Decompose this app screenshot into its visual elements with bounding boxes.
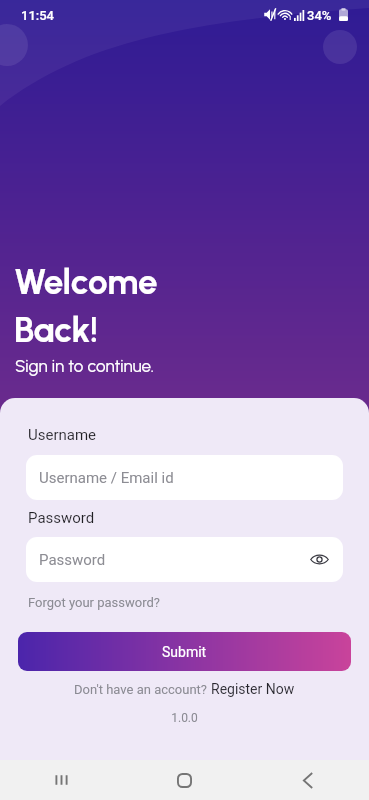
other: Show password [310, 550, 329, 569]
staticText: 34% [307, 8, 332, 23]
staticText: Welcome [14, 261, 158, 303]
staticText: Username / Email id [39, 469, 174, 487]
button[interactable]: Recent apps [0, 760, 123, 800]
staticText: 11:54 [21, 8, 55, 23]
button[interactable]: Password [26, 537, 343, 582]
button[interactable]: Back [246, 760, 369, 800]
staticText: Username [28, 426, 97, 444]
staticText: Back! [14, 309, 99, 351]
button[interactable]: Home [123, 760, 246, 800]
button[interactable]: Username / Email id [26, 455, 343, 500]
button[interactable]: Register Now [211, 681, 295, 697]
staticText: Sign in to continue. [15, 356, 154, 376]
staticText: Don't have an account? [74, 682, 211, 697]
button[interactable]: Submit [18, 632, 351, 671]
staticText: Register Now [211, 681, 295, 697]
button[interactable]: Forgot your password? [24, 593, 164, 612]
staticText: Password [28, 509, 95, 527]
staticText: Forgot your password? [28, 595, 160, 610]
staticText: 1.0.0 [0, 711, 369, 725]
staticText: Password [39, 551, 106, 569]
staticText: Submit [162, 644, 207, 660]
